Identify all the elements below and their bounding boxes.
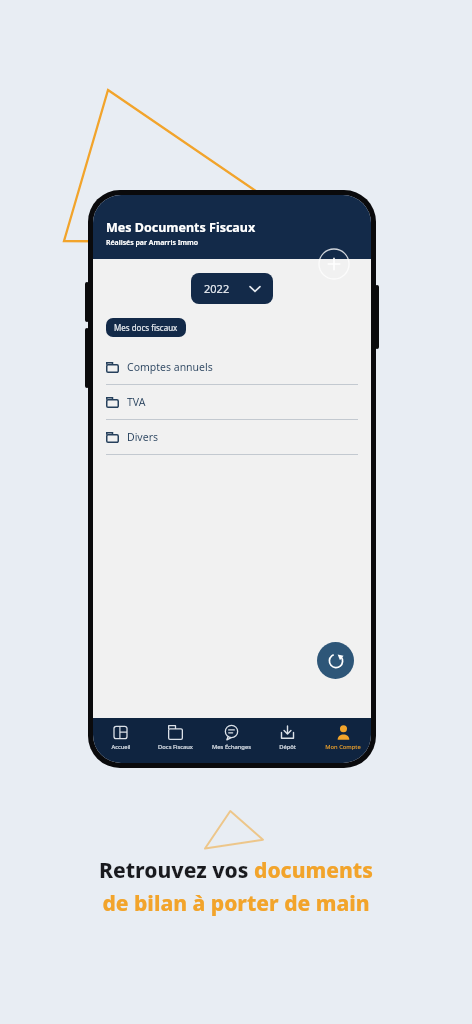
staticText: Retrouvez vos	[99, 856, 254, 885]
button[interactable]: Rafraîchir	[317, 642, 354, 679]
staticText: Mes docs fiscaux	[114, 322, 178, 333]
button[interactable]: Mon Compte	[315, 718, 371, 763]
button[interactable]: Accueil	[93, 718, 148, 763]
button[interactable]: Mes Échanges	[203, 718, 259, 763]
staticText: Divers	[127, 430, 158, 444]
staticText: TVA	[127, 395, 146, 409]
other: Ajouter	[318, 248, 350, 280]
staticText: Accueil	[111, 743, 131, 751]
button[interactable]: TVA	[93, 385, 371, 420]
staticText: Mon Compte	[325, 743, 361, 751]
staticText: Docs Fiscaux	[158, 743, 193, 751]
staticText: Réalisés par Amarris Immo	[106, 238, 199, 248]
staticText: 2022	[204, 281, 230, 296]
staticText: Mes Échanges	[212, 743, 251, 751]
staticText: Mes Documents Fiscaux	[106, 219, 256, 236]
button[interactable]: Comptes annuels	[93, 350, 371, 385]
staticText: de bilan à porter de main	[102, 889, 370, 918]
staticText: Comptes annuels	[127, 360, 213, 374]
button[interactable]: Divers	[93, 420, 371, 455]
button[interactable]: Dépôt	[259, 718, 315, 763]
button[interactable]: Mes docs fiscaux	[106, 318, 186, 337]
staticText: Dépôt	[279, 743, 296, 751]
button[interactable]: 2022	[191, 273, 273, 304]
staticText: documents	[254, 856, 373, 885]
button[interactable]: Docs Fiscaux	[148, 718, 203, 763]
